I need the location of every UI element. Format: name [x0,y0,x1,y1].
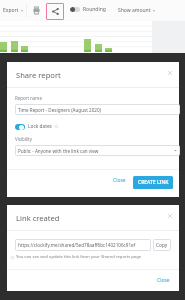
button[interactable]: Print [29,3,44,18]
staticText: Report name [15,95,42,101]
button[interactable]: Public - Anyone with the link can view [15,145,180,156]
staticText: You can see and update this link from yo… [16,254,142,260]
staticText: Copy [156,242,168,249]
button[interactable]: Time Report - Designers (August 2020) [15,104,180,115]
button[interactable]: Share [46,3,64,20]
staticText: Show amount [118,7,151,14]
staticText: Public - Anyone with the link can view [18,148,99,154]
staticText: Share report [16,70,61,80]
button[interactable]: Show amount [118,7,155,14]
button[interactable]: Export [3,7,23,14]
button[interactable]: Close dialog [165,68,175,78]
button[interactable]: Copy [153,239,171,251]
staticText: Export [3,7,19,14]
button[interactable]: CREATE LINK [133,176,173,189]
button[interactable]: Close [154,274,173,287]
button[interactable]: Close [110,174,129,187]
button[interactable]: Lock dates [11,119,62,134]
staticText: Rounding [83,6,106,13]
staticText: Close [113,177,126,184]
staticText: https://clockify.me/shared/5ed78aaff6bc1… [18,242,136,248]
staticText: Lock dates [28,123,52,130]
staticText: CREATE LINK [138,179,169,186]
staticText: Link created [16,213,60,223]
button[interactable]: Rounding [70,6,106,13]
staticText: Close [157,277,170,284]
staticText: Time Report - Designers (August 2020) [18,107,101,113]
staticText: Visibility [15,136,32,142]
button[interactable]: Close dialog [165,211,175,221]
